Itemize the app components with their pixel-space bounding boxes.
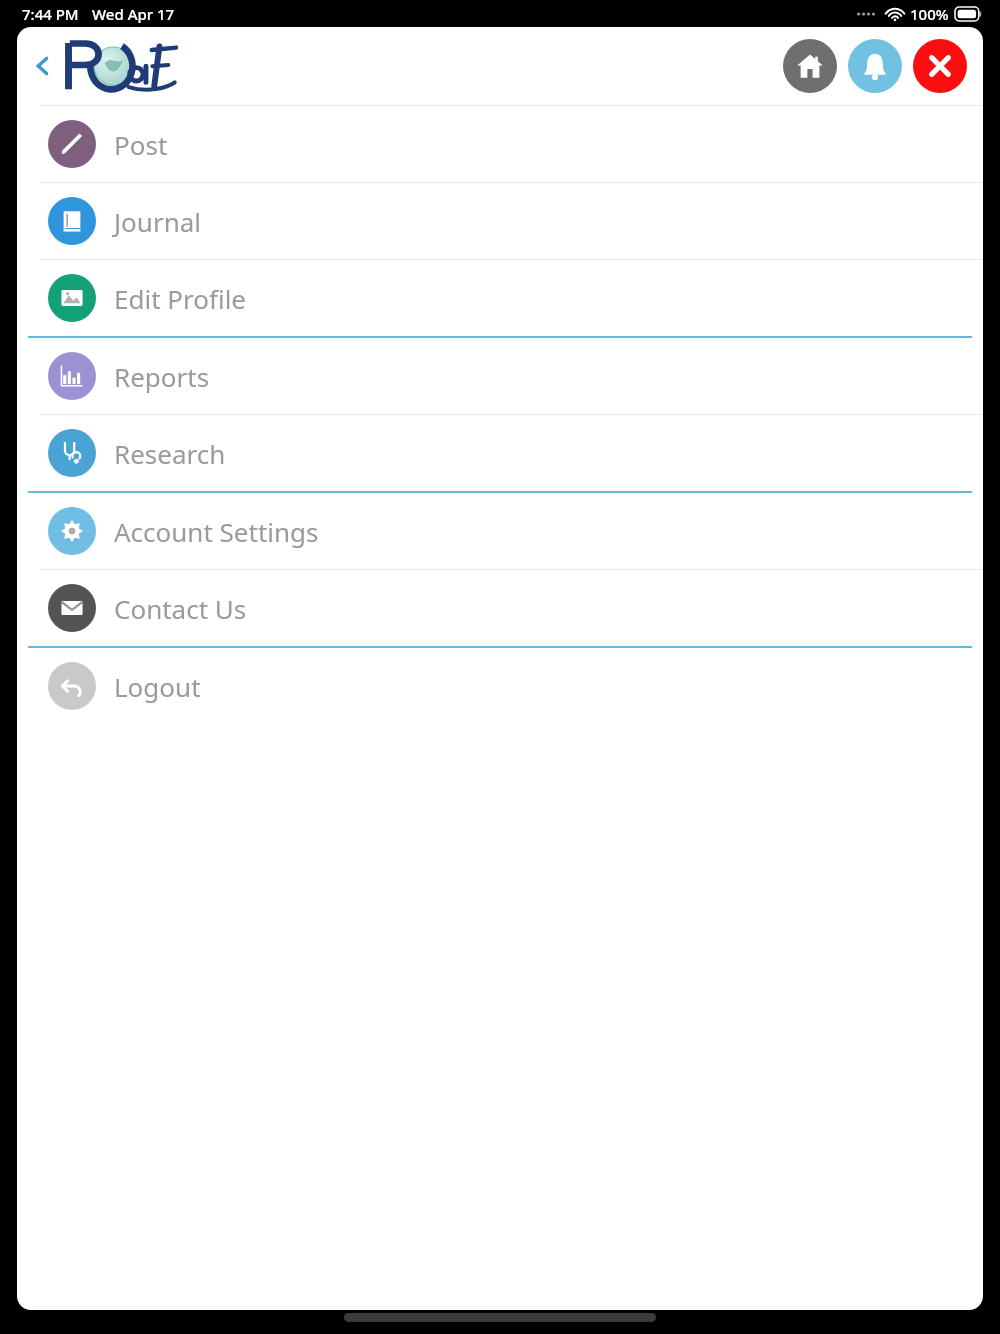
button[interactable]: Home [783,39,837,93]
button[interactable]: Post [17,106,983,182]
button[interactable]: Notifications [848,39,902,93]
staticText: 100% [910,4,949,24]
button[interactable]: Account Settings [17,493,983,569]
staticText: Account Settings [114,514,319,549]
button[interactable]: Reports [17,338,983,414]
button[interactable]: Close [913,39,967,93]
staticText: Edit Profile [114,281,247,316]
button[interactable]: Logout [17,648,983,724]
button[interactable]: Journal [17,183,983,259]
staticText: Wed Apr 17 [92,4,175,24]
staticText: Journal [114,204,201,239]
staticText: Research [114,436,226,471]
staticText: Logout [114,669,201,704]
button[interactable]: Research [17,415,983,491]
button[interactable]: Contact Us [17,570,983,646]
button[interactable]: Edit Profile [17,260,983,336]
staticText: Post [114,127,168,162]
button[interactable]: Back [25,48,61,84]
staticText: Reports [114,359,210,394]
staticText: 7:44 PM [22,4,79,24]
staticText: Contact Us [114,591,247,626]
